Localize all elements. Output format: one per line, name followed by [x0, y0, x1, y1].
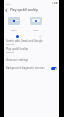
button[interactable]: View user settings — [4, 57, 59, 62]
button[interactable]: Select dark theme — [39, 35, 42, 38]
staticText: Dark — [33, 29, 39, 32]
staticText: View user settings — [6, 58, 29, 62]
staticText: 9:41 — [6, 2, 11, 5]
staticText: Search with Gmail and Google — [6, 39, 43, 43]
button[interactable]: Background diagnostic services — [4, 65, 59, 71]
staticText: Play upskill tooltip — [6, 47, 29, 51]
staticText: Play upskill tooltip — [10, 8, 38, 12]
button[interactable]: Search with Gmail and Google — [4, 39, 59, 47]
button[interactable]: Select light theme — [16, 35, 19, 38]
button[interactable]: Play upskill tooltip — [4, 47, 59, 55]
staticText: Light — [11, 29, 17, 32]
button[interactable]: Back — [4, 8, 9, 13]
button[interactable] — [30, 17, 42, 25]
button[interactable] — [8, 17, 20, 25]
staticText: Settings — [6, 43, 14, 46]
staticText: Settings — [6, 51, 14, 54]
staticText: Background diagnostic services — [6, 66, 51, 70]
